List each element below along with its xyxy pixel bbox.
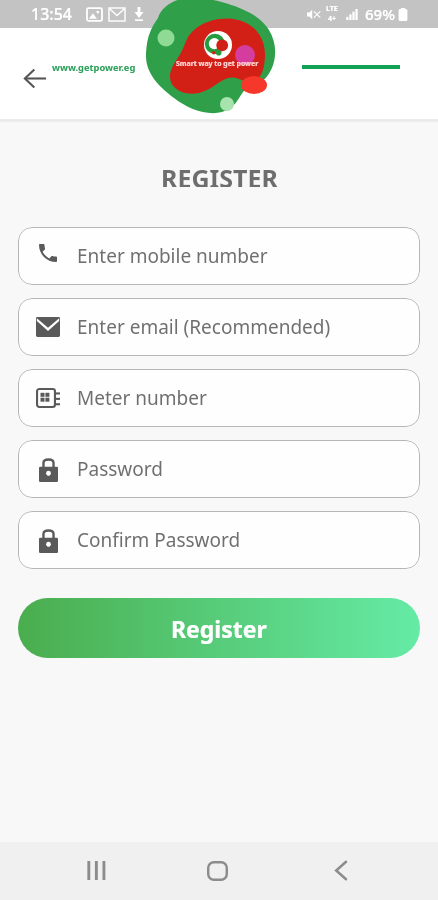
button[interactable]: Enter mobile number <box>18 227 420 285</box>
staticText: 4+ <box>328 14 337 24</box>
staticText: 13:54 <box>31 3 72 25</box>
button[interactable]: Confirm Password <box>18 511 420 569</box>
staticText: Enter email (Recommended) <box>77 314 331 340</box>
staticText: Enter mobile number <box>77 243 268 269</box>
staticText: www.getpower.eg <box>52 61 136 74</box>
staticText: Confirm Password <box>77 527 241 553</box>
staticText: LTE <box>326 4 338 14</box>
button[interactable]: Back <box>317 847 364 894</box>
staticText: Meter number <box>77 385 207 411</box>
button[interactable]: Recent apps <box>72 847 119 894</box>
button[interactable]: Home <box>194 847 241 894</box>
button[interactable]: Password <box>18 440 420 498</box>
button[interactable]: Back <box>14 57 56 99</box>
staticText: Password <box>77 456 163 482</box>
staticText: Smart way to get power <box>176 59 259 68</box>
button[interactable]: Meter number <box>18 369 420 427</box>
button[interactable]: Register <box>18 598 420 658</box>
staticText: Register <box>171 613 267 644</box>
staticText: REGISTER <box>161 161 278 187</box>
staticText: 69% <box>365 4 395 24</box>
button[interactable]: Enter email (Recommended) <box>18 298 420 356</box>
